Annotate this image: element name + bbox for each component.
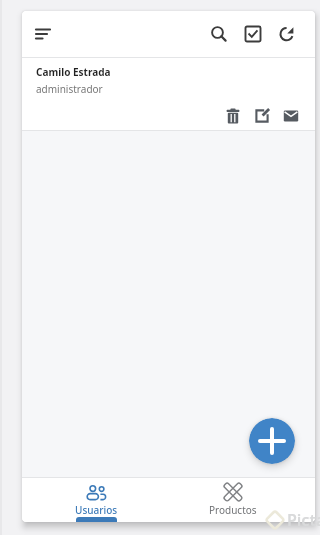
button[interactable] <box>253 107 270 124</box>
button[interactable]: Usuarios <box>56 478 137 522</box>
staticText: Picta <box>287 509 320 531</box>
staticText: Productos <box>209 503 257 517</box>
button[interactable] <box>249 418 295 464</box>
button[interactable] <box>207 22 231 46</box>
staticText: administrador <box>36 82 103 96</box>
button[interactable] <box>224 107 241 124</box>
button[interactable] <box>275 22 299 46</box>
button[interactable] <box>27 18 59 50</box>
staticText: Usuarios <box>75 503 118 517</box>
button[interactable]: Productos <box>188 478 277 522</box>
button[interactable] <box>241 22 265 46</box>
button[interactable]: Camilo Estrada <box>22 58 315 130</box>
staticText: Camilo Estrada <box>36 65 111 79</box>
button[interactable] <box>282 107 299 124</box>
